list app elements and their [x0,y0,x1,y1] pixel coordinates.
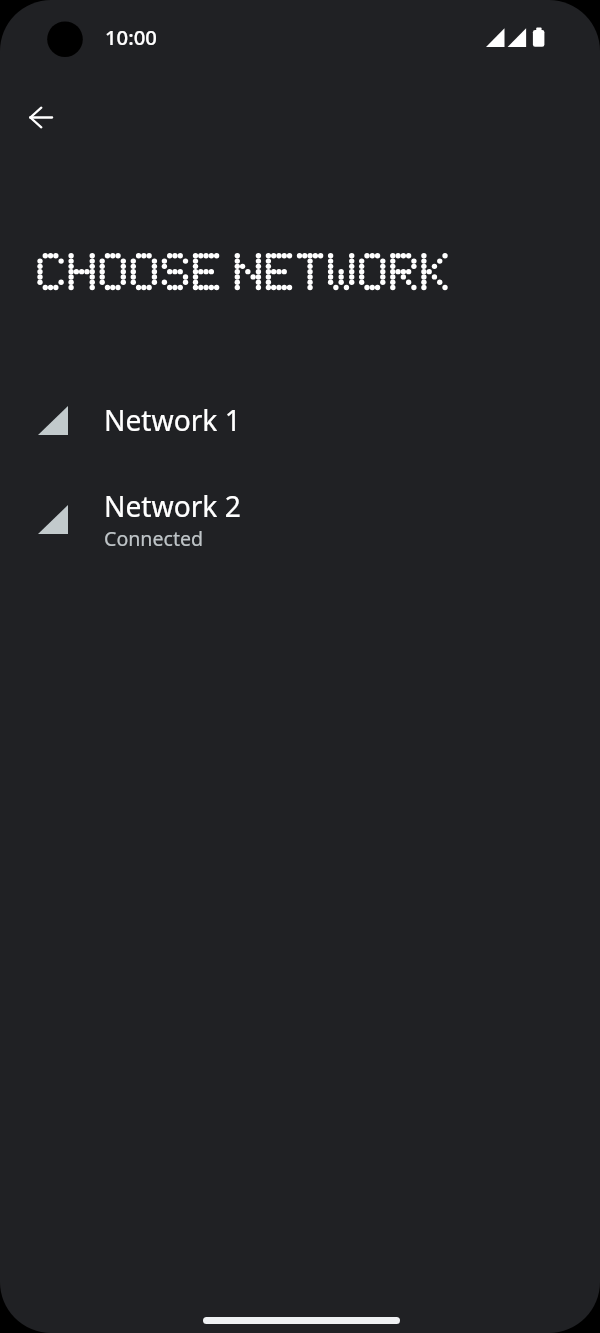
button[interactable]: Network 2 [0,470,600,568]
staticText: 10:00 [105,23,157,51]
button[interactable]: Back [14,90,68,144]
other: CHOOSE NETWORK [0,240,600,300]
staticText: Network 1 [104,401,241,439]
staticText: Network 2 [104,487,241,525]
button[interactable]: Network 1 [0,377,600,463]
staticText: Connected [104,525,204,552]
other: Signal and battery status [484,25,548,51]
